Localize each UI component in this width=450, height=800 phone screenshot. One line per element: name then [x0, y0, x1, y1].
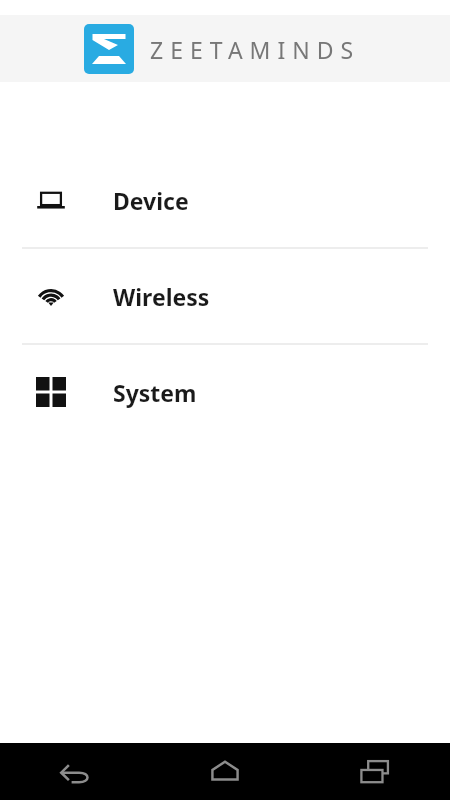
staticText: System: [113, 377, 197, 408]
button[interactable]: Wireless: [0, 249, 450, 343]
staticText: ZEETAMINDS: [150, 34, 361, 65]
staticText: Wireless: [113, 281, 210, 312]
staticText: Device: [113, 185, 189, 216]
button[interactable]: Recent apps: [300, 743, 450, 800]
button[interactable]: Device: [0, 153, 450, 247]
button[interactable]: Back: [0, 743, 150, 800]
button[interactable]: Home: [150, 743, 300, 800]
button[interactable]: System: [0, 345, 450, 439]
